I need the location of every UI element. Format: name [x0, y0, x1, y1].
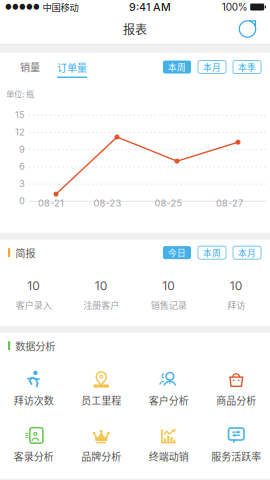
staticText: 客录分析	[14, 449, 54, 463]
button[interactable]: 客户分析	[135, 359, 202, 415]
staticText: 服务活跃率	[211, 449, 261, 463]
button[interactable]: 本月	[233, 246, 261, 259]
staticText: 单位: 瓶	[6, 87, 34, 100]
staticText: 报表	[123, 20, 147, 38]
button[interactable]: 10	[135, 262, 202, 322]
staticText: 12	[15, 126, 25, 138]
button[interactable]: 本周	[198, 246, 226, 259]
staticText: 08-23	[93, 197, 121, 209]
staticText: 销售记录	[151, 298, 187, 311]
staticText: 中国移动	[42, 0, 78, 14]
staticText: 3	[19, 178, 25, 189]
staticText: 本季	[238, 61, 256, 73]
staticText: 0	[19, 195, 25, 206]
button[interactable]: 本周	[163, 60, 191, 73]
staticText: 10	[95, 279, 108, 293]
button[interactable]: 商品分析	[202, 359, 270, 415]
staticText: 数据分析	[15, 338, 55, 353]
staticText: 品牌分析	[81, 449, 121, 463]
staticText: 本周	[168, 61, 186, 73]
button[interactable]: 终端动销	[135, 415, 202, 471]
button[interactable]: 刷新	[234, 14, 262, 44]
staticText: 今日	[168, 246, 186, 259]
button[interactable]: 今日	[163, 246, 191, 259]
staticText: 10	[27, 279, 40, 293]
staticText: 9:41 AM	[129, 0, 171, 13]
staticText: 15	[15, 109, 25, 120]
button[interactable]: 服务活跃率	[202, 415, 270, 471]
button[interactable]: 10	[202, 262, 270, 322]
button[interactable]: 本季	[233, 60, 261, 73]
staticText: 100%	[222, 1, 248, 13]
button[interactable]: 员工里程	[67, 359, 135, 415]
staticText: 08-25	[154, 197, 182, 209]
button[interactable]: 10	[0, 262, 67, 322]
staticText: 本月	[238, 246, 256, 259]
button[interactable]: 10	[67, 262, 135, 322]
staticText: 本周	[203, 246, 221, 259]
staticText: 简报	[15, 245, 35, 260]
button[interactable]: 客录分析	[0, 415, 67, 471]
staticText: 商品分析	[216, 393, 256, 407]
staticText: 10	[162, 279, 175, 293]
button[interactable]: 销量	[14, 52, 46, 81]
staticText: 拜访	[227, 298, 245, 311]
staticText: 9	[19, 144, 25, 155]
staticText: 客户分析	[149, 393, 189, 407]
staticText: 销量	[20, 60, 40, 74]
staticText: 10	[230, 279, 243, 293]
staticText: 订单量	[57, 60, 87, 75]
staticText: 终端动销	[149, 449, 189, 463]
button[interactable]: 拜访次数	[0, 359, 67, 415]
button[interactable]: 本月	[198, 60, 226, 73]
staticText: 08-21	[38, 197, 64, 209]
staticText: 客户录入	[16, 298, 52, 311]
staticText: 本月	[203, 61, 221, 73]
button[interactable]: 订单量	[56, 52, 88, 81]
button[interactable]: 品牌分析	[67, 415, 135, 471]
staticText: ●●●●●	[5, 3, 40, 11]
staticText: 6	[19, 161, 25, 172]
staticText: 注册客户	[83, 298, 119, 311]
staticText: 拜访次数	[14, 393, 54, 407]
staticText: 员工里程	[81, 393, 121, 407]
staticText: 08-27	[216, 197, 243, 209]
